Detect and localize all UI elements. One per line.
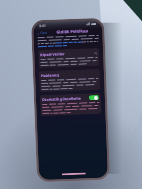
- staticText: ‹: [37, 30, 39, 35]
- staticText: Kişisel Veriler: [40, 51, 65, 57]
- button[interactable]: Kişisel Veriler: [38, 48, 100, 68]
- button[interactable]: ‹: [37, 30, 47, 35]
- staticText: Haklarınız: [41, 72, 60, 78]
- staticText: Gizlilik Politikası: [56, 28, 88, 34]
- button[interactable]: Otomatik güncelleme: [40, 93, 102, 116]
- staticText: 9:41: [39, 23, 46, 28]
- staticText: Geri: [39, 30, 47, 35]
- button[interactable]: Otomatik güncelleme aç/kapat: [89, 95, 99, 100]
- button[interactable]: Haklarınız: [39, 69, 101, 92]
- staticText: Aç: [94, 51, 97, 55]
- staticText: Otomatik güncelleme: [42, 96, 81, 102]
